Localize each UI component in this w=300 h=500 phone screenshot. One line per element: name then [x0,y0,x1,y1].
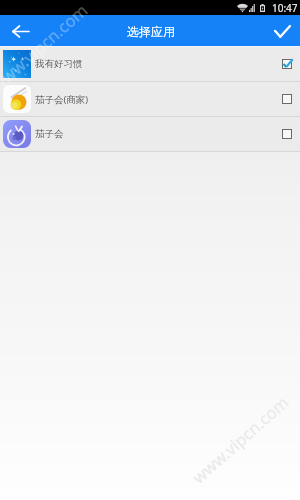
button[interactable]: Back [0,15,40,46]
button[interactable]: Not selected [276,82,298,116]
button[interactable]: Confirm [264,15,300,46]
staticText: 10:47 [272,1,298,15]
button[interactable]: Selected [276,47,298,81]
staticText: www.vipcn.com [187,390,293,488]
staticText: 茄子会(商家) [35,93,89,106]
button[interactable]: Not selected [276,117,298,151]
staticText: 选择应用 [127,24,175,39]
button[interactable]: 茄子会(商家) [0,82,300,116]
staticText: www.vipcn.com [0,0,92,96]
button[interactable]: 我有好习惯 [0,47,300,81]
staticText: 我有好习惯 [35,58,83,70]
staticText: 茄子会 [35,128,64,140]
button[interactable]: 茄子会 [0,117,300,151]
